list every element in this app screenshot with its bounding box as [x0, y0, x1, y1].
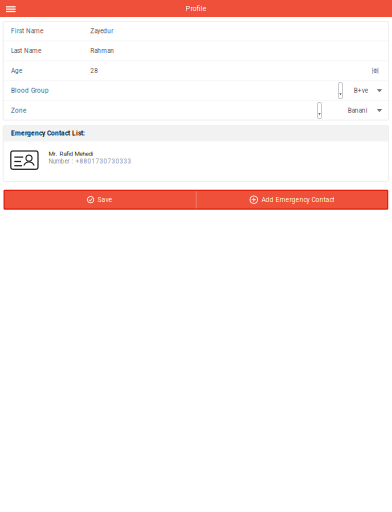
staticText: Mr. Rafid Mehedi — [48, 150, 92, 157]
button[interactable]: Add Emergency Contact — [196, 190, 388, 209]
button[interactable]: Save — [4, 190, 195, 209]
staticText: Zone — [11, 107, 26, 114]
button[interactable]: Banani — [317, 101, 388, 120]
button[interactable]: B+ve — [338, 81, 388, 100]
button[interactable]: Menu — [0, 0, 21, 17]
staticText: Banani — [348, 107, 368, 114]
staticText: Number : +8801730730333 — [48, 158, 131, 165]
staticText: Profile — [185, 4, 206, 13]
staticText: B+ve — [354, 87, 368, 94]
staticText: Add Emergency Contact — [261, 196, 334, 204]
staticText: Age — [11, 67, 22, 74]
staticText: Blood Group — [11, 87, 49, 94]
staticText: First Name — [11, 27, 43, 35]
staticText: Zayedur — [90, 27, 113, 35]
button[interactable]: Mr. Rafid Mehedi — [3, 141, 388, 182]
staticText: 28 — [90, 67, 98, 74]
staticText: Last Name — [11, 47, 41, 55]
staticText: Emergency Contact List: — [11, 129, 85, 137]
staticText: Rahman — [90, 47, 114, 55]
staticText: Save — [98, 196, 113, 204]
